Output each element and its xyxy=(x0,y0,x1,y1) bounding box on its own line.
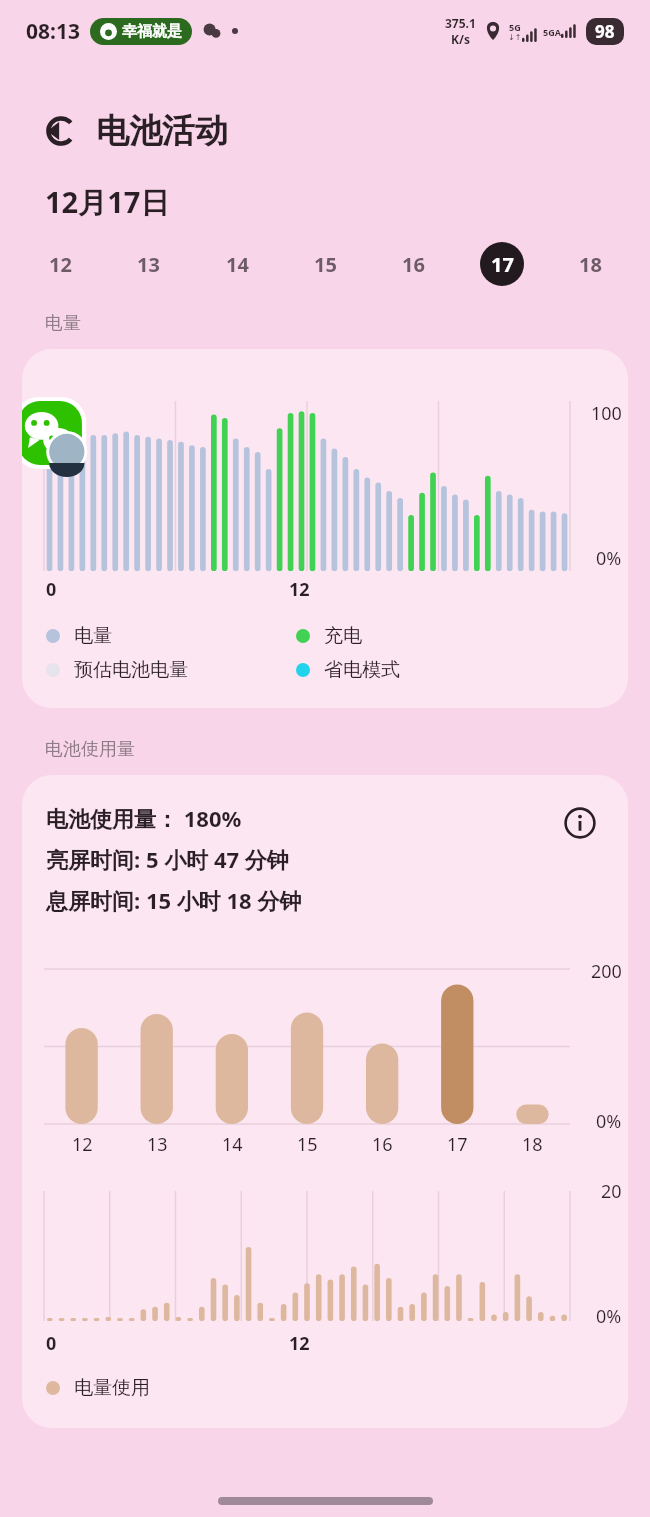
staticText: 电池使用量 xyxy=(45,738,135,761)
staticText: 12月17日 xyxy=(45,182,170,222)
staticText: 16 xyxy=(372,1132,393,1157)
staticText: 亮屏时间: 5 小时 47 分钟 xyxy=(46,844,289,874)
staticText: 375.1 xyxy=(445,15,476,31)
staticText: 98 xyxy=(595,20,615,43)
staticText: 18 xyxy=(579,251,602,278)
staticText: 18 xyxy=(522,1132,543,1157)
staticText: 幸福就是 xyxy=(122,22,182,41)
staticText: 15 xyxy=(314,251,337,278)
button[interactable]: 16 xyxy=(391,242,435,286)
staticText: 13 xyxy=(147,1132,168,1157)
staticText: 5G xyxy=(509,21,521,33)
staticText: 12 xyxy=(289,577,310,602)
staticText: 电量 xyxy=(74,624,112,648)
staticText: 电量使用 xyxy=(74,1376,150,1400)
staticText: 12 xyxy=(49,251,72,278)
button[interactable]: 100 xyxy=(22,349,628,708)
staticText: 充电 xyxy=(324,624,362,648)
staticText: 息屏时间: 15 小时 18 分钟 xyxy=(46,885,302,915)
staticText: 5GA xyxy=(543,26,561,38)
staticText: 电池使用量： 180% xyxy=(46,803,242,833)
staticText: 16 xyxy=(402,251,425,278)
staticText: 电池活动 xyxy=(96,110,228,152)
staticText: 17 xyxy=(491,251,514,278)
staticText: 0% xyxy=(596,1304,622,1329)
button[interactable]: 14 xyxy=(215,242,259,286)
staticText: 省电模式 xyxy=(324,658,400,682)
staticText: 20 xyxy=(601,1179,622,1204)
staticText: 14 xyxy=(226,251,249,278)
staticText: 08:13 xyxy=(26,17,80,46)
staticText: 14 xyxy=(222,1132,243,1157)
staticText: 100 xyxy=(591,401,622,426)
staticText: 电量 xyxy=(45,312,81,335)
staticText: 12 xyxy=(72,1132,93,1157)
button[interactable]: 17 xyxy=(480,242,524,286)
button[interactable]: 12 xyxy=(38,242,82,286)
button[interactable]: Info xyxy=(560,803,600,843)
button[interactable]: 15 xyxy=(303,242,347,286)
staticText: 200 xyxy=(591,959,622,984)
button[interactable]: WeChat xyxy=(22,391,92,475)
staticText: 17 xyxy=(447,1132,468,1157)
staticText: 13 xyxy=(137,251,160,278)
button[interactable]: 13 xyxy=(126,242,170,286)
staticText: 15 xyxy=(297,1132,318,1157)
staticText: ↓↑ xyxy=(508,33,522,42)
staticText: 0% xyxy=(596,546,622,571)
button[interactable]: 电池使用量： 180% xyxy=(22,775,628,1428)
staticText: 预估电池电量 xyxy=(74,658,188,682)
button[interactable]: Back xyxy=(40,110,82,152)
staticText: K/s xyxy=(451,31,470,47)
staticText: 0 xyxy=(46,577,57,602)
staticText: 12 xyxy=(289,1331,310,1356)
staticText: 0 xyxy=(46,1331,57,1356)
staticText: 0% xyxy=(596,1109,622,1134)
button[interactable]: 18 xyxy=(568,242,612,286)
